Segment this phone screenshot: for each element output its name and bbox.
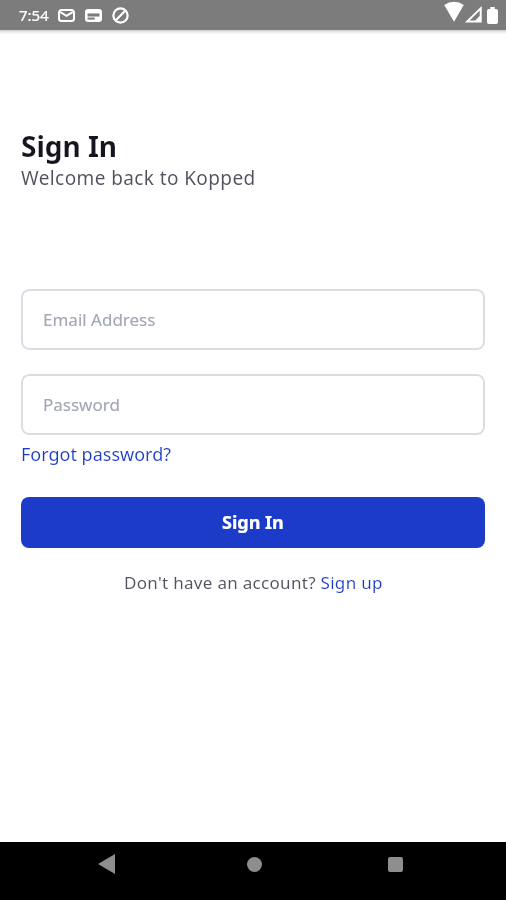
button[interactable]: Don't have an account? Sign up	[124, 571, 383, 594]
staticText: Email Address	[43, 308, 156, 331]
button[interactable]	[247, 857, 262, 872]
staticText: Forgot password?	[21, 442, 172, 467]
button[interactable]: Forgot password?	[21, 442, 172, 467]
staticText: Password	[43, 393, 120, 416]
button[interactable]: Password	[21, 374, 485, 435]
button[interactable]: Email Address	[21, 289, 485, 350]
button[interactable]	[98, 854, 115, 874]
button[interactable]	[388, 857, 403, 872]
staticText: Sign In	[222, 510, 284, 535]
staticText: Welcome back to Kopped	[21, 165, 256, 191]
button[interactable]: Sign In	[21, 497, 485, 548]
staticText: Sign In	[21, 127, 118, 165]
staticText: Don't have an account? Sign up	[124, 571, 383, 594]
staticText: 7:54	[19, 5, 49, 25]
